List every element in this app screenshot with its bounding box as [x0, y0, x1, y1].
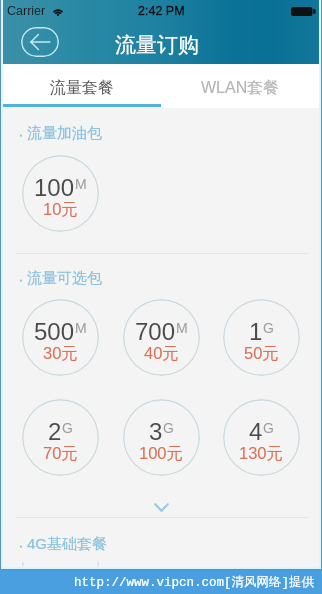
staticText: 流量订购	[115, 32, 199, 58]
button[interactable]: WLAN套餐	[161, 67, 319, 108]
staticText: 100	[34, 174, 75, 201]
staticText: 130元	[239, 443, 284, 464]
staticText: 2	[48, 418, 62, 445]
button[interactable]: 500	[22, 561, 99, 567]
staticText: Carrier	[7, 4, 46, 18]
button[interactable]: 500	[22, 299, 99, 376]
button[interactable]: 2	[22, 399, 99, 476]
staticText: 1	[249, 318, 263, 345]
button[interactable]: 1	[223, 299, 300, 376]
staticText: http://www.vipcn.com[清风网络]提供	[74, 574, 315, 590]
staticText: 流量可选包	[27, 269, 102, 288]
staticText: 10元	[43, 199, 78, 220]
staticText: G	[163, 420, 174, 436]
staticText: 30元	[43, 343, 78, 364]
staticText: 2:42 PM	[138, 4, 185, 18]
staticText: 3	[149, 418, 163, 445]
staticText: 流量加油包	[27, 124, 102, 143]
staticText: 4	[249, 418, 263, 445]
button[interactable]: 3	[123, 399, 200, 476]
staticText: G	[263, 420, 274, 436]
button[interactable]: 100	[22, 155, 99, 232]
staticText: 40元	[144, 343, 179, 364]
staticText: 50元	[244, 343, 279, 364]
staticText: 流量套餐	[50, 78, 114, 98]
button[interactable]: Back	[21, 27, 59, 57]
button[interactable]: 流量套餐	[3, 67, 161, 108]
staticText: M	[75, 320, 87, 336]
staticText: G	[62, 420, 73, 436]
button[interactable]: 4	[223, 399, 300, 476]
staticText: 700	[135, 318, 176, 345]
staticText: M	[75, 176, 87, 192]
staticText: 70元	[43, 443, 78, 464]
staticText: 100元	[139, 443, 184, 464]
staticText: 4G基础套餐	[27, 535, 108, 554]
button[interactable]: Expand	[3, 476, 319, 517]
button[interactable]: 700	[123, 299, 200, 376]
staticText: M	[176, 320, 188, 336]
staticText: WLAN套餐	[201, 78, 280, 98]
staticText: 500	[34, 318, 75, 345]
staticText: G	[263, 320, 274, 336]
